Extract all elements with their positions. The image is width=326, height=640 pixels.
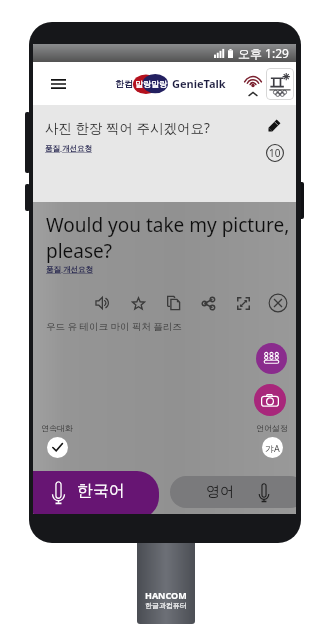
button[interactable]: Favorite: [128, 293, 148, 313]
button[interactable]: Edit: [261, 113, 287, 139]
staticText: 한국어: [77, 481, 125, 501]
staticText: 오후 1:29: [238, 45, 289, 61]
staticText: 한컴: [115, 78, 133, 89]
button[interactable]: Remaining 10: [262, 140, 288, 166]
staticText: Would you take my picture, please?: [46, 212, 292, 263]
staticText: HANCOM: [145, 589, 187, 601]
button[interactable]: Copy: [163, 293, 183, 313]
button[interactable]: Keyboard: [256, 343, 287, 374]
button[interactable]: Wifi: [240, 73, 266, 99]
staticText: 말랑말랑: [135, 79, 167, 89]
staticText: GenieTalk: [172, 76, 226, 91]
staticText: 영어: [206, 483, 234, 501]
staticText: 우드 유 테이크 마이 픽처 플리즈: [46, 320, 182, 333]
staticText: 언어설정: [256, 423, 288, 433]
button[interactable]: 언어설정: [256, 423, 288, 458]
staticText: 연속대화: [41, 423, 73, 433]
button[interactable]: Speak: [93, 293, 113, 313]
button[interactable]: 연속대화: [41, 423, 73, 458]
button[interactable]: 품질 개선요청: [45, 143, 92, 153]
button[interactable]: 영어: [170, 476, 296, 508]
button[interactable]: 품질 개선요청: [46, 264, 93, 274]
button[interactable]: Close: [268, 293, 288, 313]
staticText: 갸A: [265, 442, 280, 454]
staticText: 10: [269, 146, 281, 160]
button[interactable]: Expand: [233, 293, 253, 313]
staticText: 한글과컴퓨터: [145, 601, 187, 610]
button[interactable]: 한국어: [33, 471, 159, 514]
staticText: 사진 한장 찍어 주시겠어요?: [45, 119, 210, 137]
button[interactable]: Camera: [254, 384, 286, 416]
button[interactable]: Menu: [45, 71, 71, 97]
staticText: 품질 개선요청: [45, 143, 92, 153]
button[interactable]: PyeongChang 2018: [266, 68, 294, 100]
staticText: 품질 개선요청: [46, 264, 93, 274]
button[interactable]: Share: [198, 293, 218, 313]
